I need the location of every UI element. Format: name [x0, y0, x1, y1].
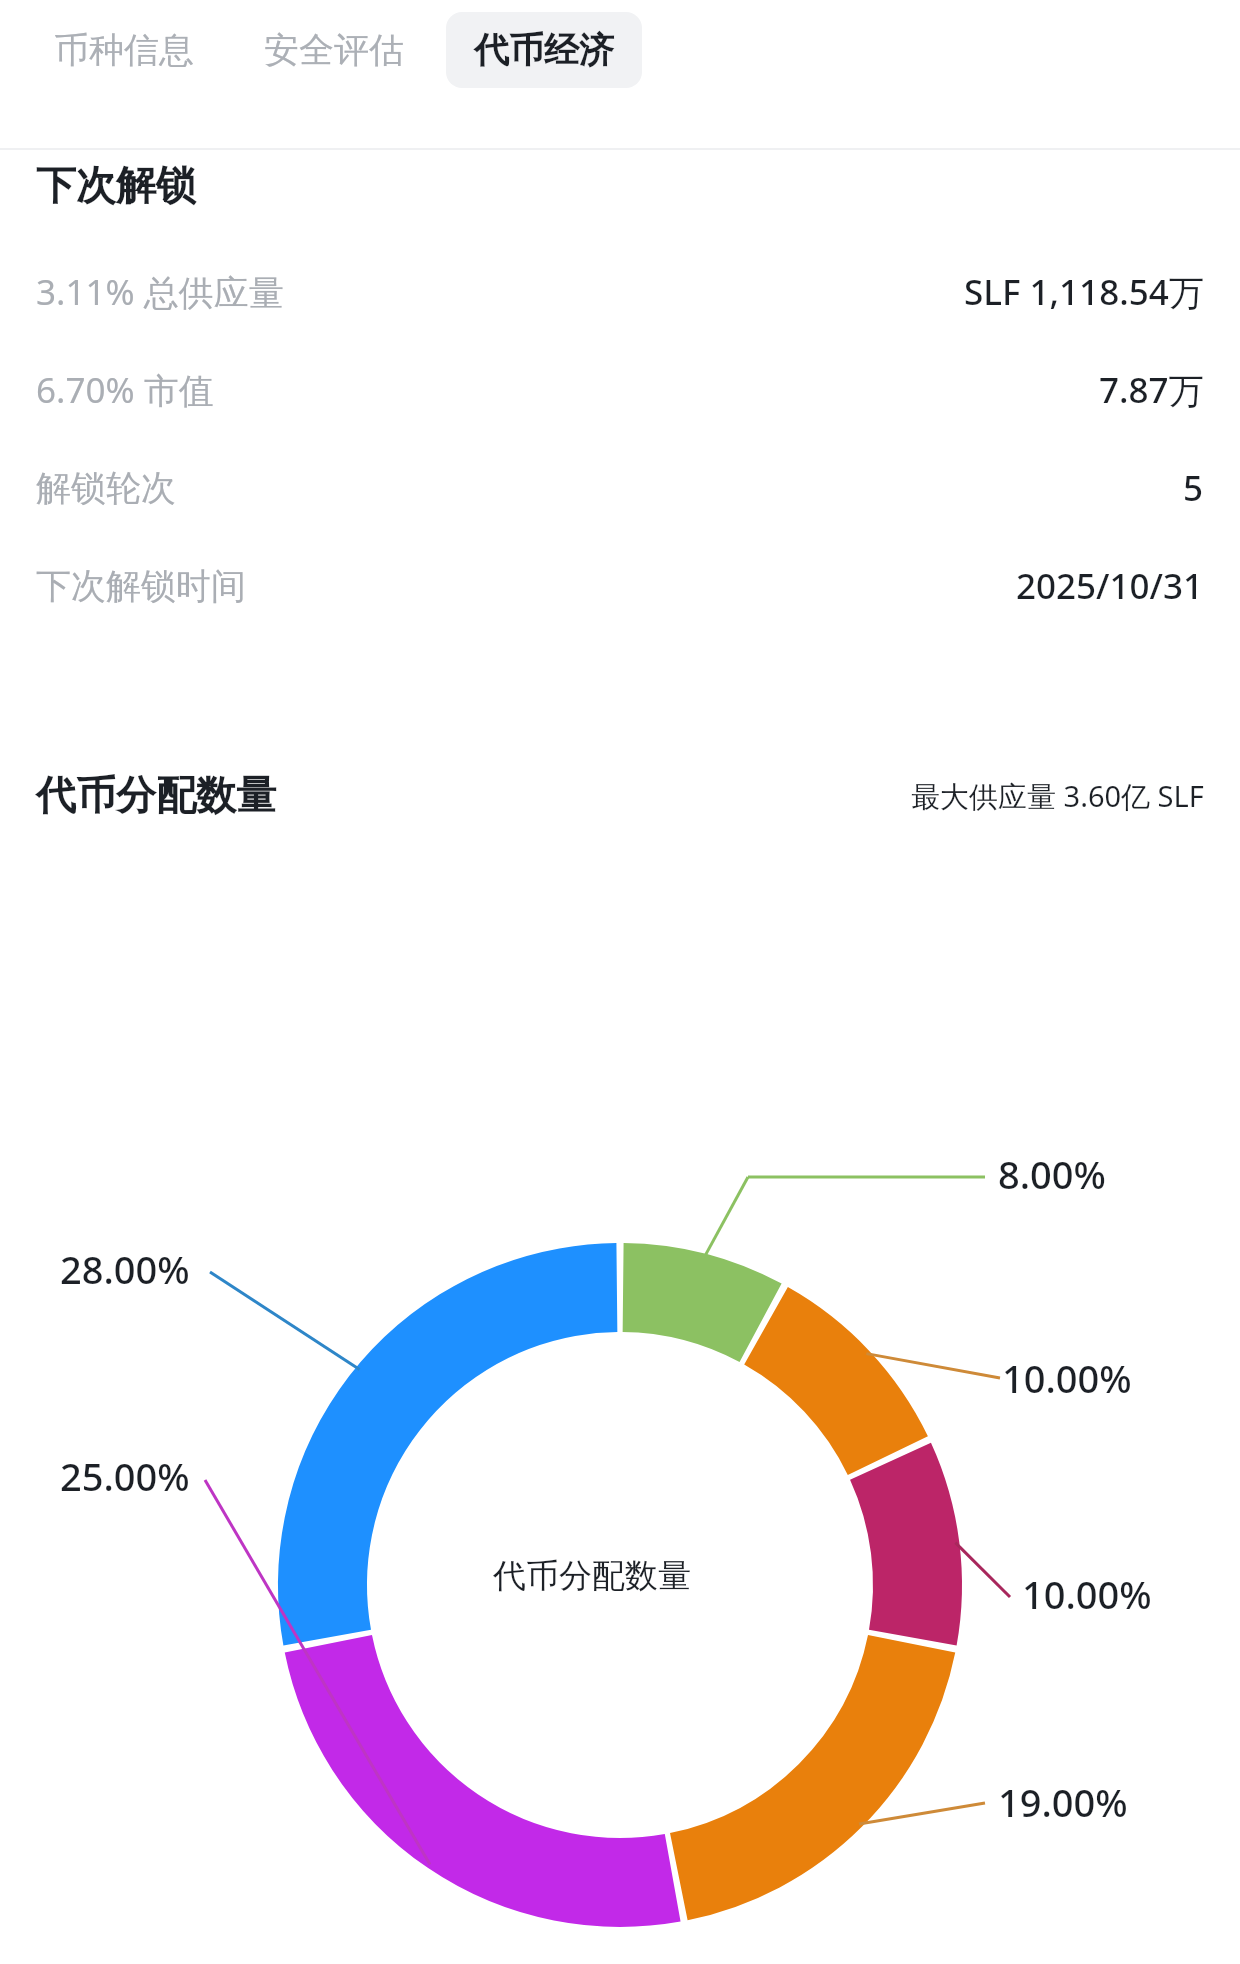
button[interactable]: 解锁轮次 [0, 458, 1240, 518]
button[interactable]: 下次解锁时间 [0, 556, 1240, 616]
staticText: 代币分配数量 [493, 1555, 691, 1597]
staticText: 代币分配数量 [36, 770, 276, 820]
staticText: 下次解锁 [36, 160, 196, 210]
staticText: 3.11% 总供应量 [36, 268, 284, 316]
staticText: 25.00% [60, 1450, 190, 1502]
button[interactable]: 安全评估 [236, 12, 432, 88]
staticText: 10.00% [1022, 1568, 1152, 1620]
staticText: 代币经济 [474, 28, 614, 72]
staticText: 6.70% 市值 [36, 366, 214, 414]
staticText: 19.00% [998, 1776, 1128, 1828]
staticText: 最大供应量 3.60亿 SLF [911, 776, 1204, 816]
staticText: 8.00% [998, 1148, 1106, 1200]
staticText: 7.87万 [1099, 366, 1204, 414]
button[interactable]: 币种信息 [26, 12, 222, 88]
button[interactable]: 3.11% 总供应量 [0, 262, 1240, 322]
staticText: 2025/10/31 [1016, 562, 1204, 610]
staticText: 5 [1183, 464, 1204, 512]
staticText: 解锁轮次 [36, 466, 176, 510]
staticText: 币种信息 [54, 28, 194, 72]
staticText: 安全评估 [264, 28, 404, 72]
button[interactable]: 6.70% 市值 [0, 360, 1240, 420]
staticText: 10.00% [1002, 1352, 1132, 1404]
button[interactable]: 代币经济 [446, 12, 642, 88]
staticText: SLF 1,118.54万 [964, 268, 1204, 316]
staticText: 下次解锁时间 [36, 564, 246, 608]
staticText: 28.00% [60, 1243, 190, 1295]
